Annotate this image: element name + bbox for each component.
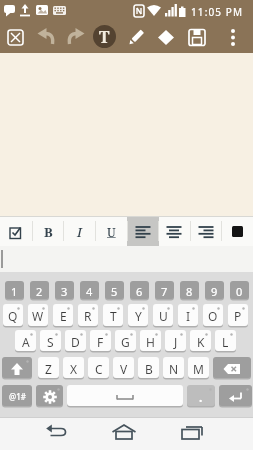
- button[interactable]: U: [95, 217, 127, 246]
- button[interactable]: S: [40, 330, 61, 353]
- staticText: X: [70, 361, 78, 377]
- staticText: W: [32, 308, 44, 324]
- staticText: J: [174, 334, 178, 350]
- staticText: 2: [36, 284, 43, 299]
- button[interactable]: R: [78, 304, 98, 328]
- staticText: Q: [8, 308, 18, 324]
- button[interactable]: [219, 385, 252, 408]
- button[interactable]: H: [140, 330, 161, 353]
- button[interactable]: M: [188, 357, 209, 380]
- button[interactable]: [187, 27, 207, 49]
- staticText: P: [234, 308, 242, 324]
- staticText: 0: [236, 284, 243, 299]
- staticText: V: [120, 361, 128, 377]
- button[interactable]: .: [187, 385, 215, 408]
- staticText: A: [22, 334, 30, 350]
- staticText: 6: [136, 284, 143, 299]
- staticText: H: [146, 334, 155, 350]
- staticText: 8: [186, 284, 193, 299]
- button[interactable]: I: [63, 217, 95, 246]
- button[interactable]: [190, 217, 222, 246]
- staticText: R: [84, 308, 92, 324]
- button[interactable]: [67, 385, 183, 408]
- button[interactable]: 7: [155, 281, 174, 301]
- staticText: C: [95, 361, 103, 377]
- button[interactable]: Y: [128, 304, 148, 328]
- button[interactable]: 3: [55, 281, 74, 301]
- button[interactable]: 4: [80, 281, 99, 301]
- button[interactable]: [111, 423, 137, 445]
- button[interactable]: [156, 27, 176, 49]
- staticText: 5: [111, 284, 118, 299]
- staticText: 7: [161, 284, 168, 299]
- staticText: T: [99, 26, 110, 48]
- staticText: E: [60, 308, 67, 324]
- button[interactable]: 5: [105, 281, 124, 301]
- staticText: 11:05 PM: [191, 5, 244, 19]
- button[interactable]: [126, 27, 146, 49]
- staticText: L: [222, 334, 229, 350]
- button[interactable]: [44, 423, 70, 445]
- button[interactable]: O: [203, 304, 223, 328]
- button[interactable]: [36, 385, 63, 408]
- button[interactable]: E: [53, 304, 73, 328]
- button[interactable]: [65, 27, 85, 49]
- button[interactable]: [158, 217, 190, 246]
- button[interactable]: [127, 217, 159, 246]
- staticText: U: [159, 308, 168, 324]
- button[interactable]: C: [88, 357, 109, 380]
- button[interactable]: [179, 423, 205, 445]
- button[interactable]: 0: [230, 281, 249, 301]
- button[interactable]: @1#: [2, 385, 32, 408]
- button[interactable]: [221, 217, 253, 246]
- button[interactable]: I: [178, 304, 198, 328]
- button[interactable]: [6, 27, 26, 49]
- button[interactable]: B: [138, 357, 159, 380]
- staticText: B: [44, 223, 53, 241]
- button[interactable]: 8: [180, 281, 199, 301]
- button[interactable]: Q: [3, 304, 23, 328]
- staticText: 3: [61, 284, 68, 299]
- button[interactable]: 1: [5, 281, 24, 301]
- staticText: G: [121, 334, 130, 350]
- button[interactable]: P: [228, 304, 248, 328]
- button[interactable]: B: [32, 217, 64, 246]
- button[interactable]: U: [153, 304, 173, 328]
- staticText: T: [110, 308, 117, 324]
- staticText: .: [199, 389, 203, 405]
- staticText: O: [208, 308, 218, 324]
- button[interactable]: J: [165, 330, 186, 353]
- button[interactable]: T: [103, 304, 123, 328]
- staticText: M: [193, 361, 204, 377]
- button[interactable]: W: [28, 304, 48, 328]
- button[interactable]: T: [93, 25, 116, 48]
- staticText: N: [169, 361, 179, 377]
- button[interactable]: [37, 27, 57, 49]
- staticText: I: [77, 223, 82, 241]
- staticText: B: [145, 361, 153, 377]
- button[interactable]: [2, 357, 32, 380]
- staticText: Y: [135, 308, 142, 324]
- staticText: I: [186, 308, 191, 324]
- staticText: 1: [11, 284, 18, 299]
- button[interactable]: G: [115, 330, 136, 353]
- button[interactable]: L: [215, 330, 236, 353]
- button[interactable]: N: [163, 357, 184, 380]
- button[interactable]: V: [113, 357, 134, 380]
- button[interactable]: [226, 27, 240, 49]
- button[interactable]: 2: [30, 281, 49, 301]
- staticText: K: [197, 334, 205, 350]
- button[interactable]: [0, 217, 32, 246]
- button[interactable]: K: [190, 330, 211, 353]
- button[interactable]: 6: [130, 281, 149, 301]
- button[interactable]: 9: [205, 281, 224, 301]
- button[interactable]: D: [65, 330, 86, 353]
- button[interactable]: Z: [38, 357, 59, 380]
- staticText: 4: [86, 284, 93, 299]
- staticText: F: [97, 334, 104, 350]
- button[interactable]: [213, 357, 251, 380]
- button[interactable]: A: [15, 330, 36, 353]
- staticText: D: [71, 334, 80, 350]
- button[interactable]: X: [63, 357, 84, 380]
- button[interactable]: F: [90, 330, 111, 353]
